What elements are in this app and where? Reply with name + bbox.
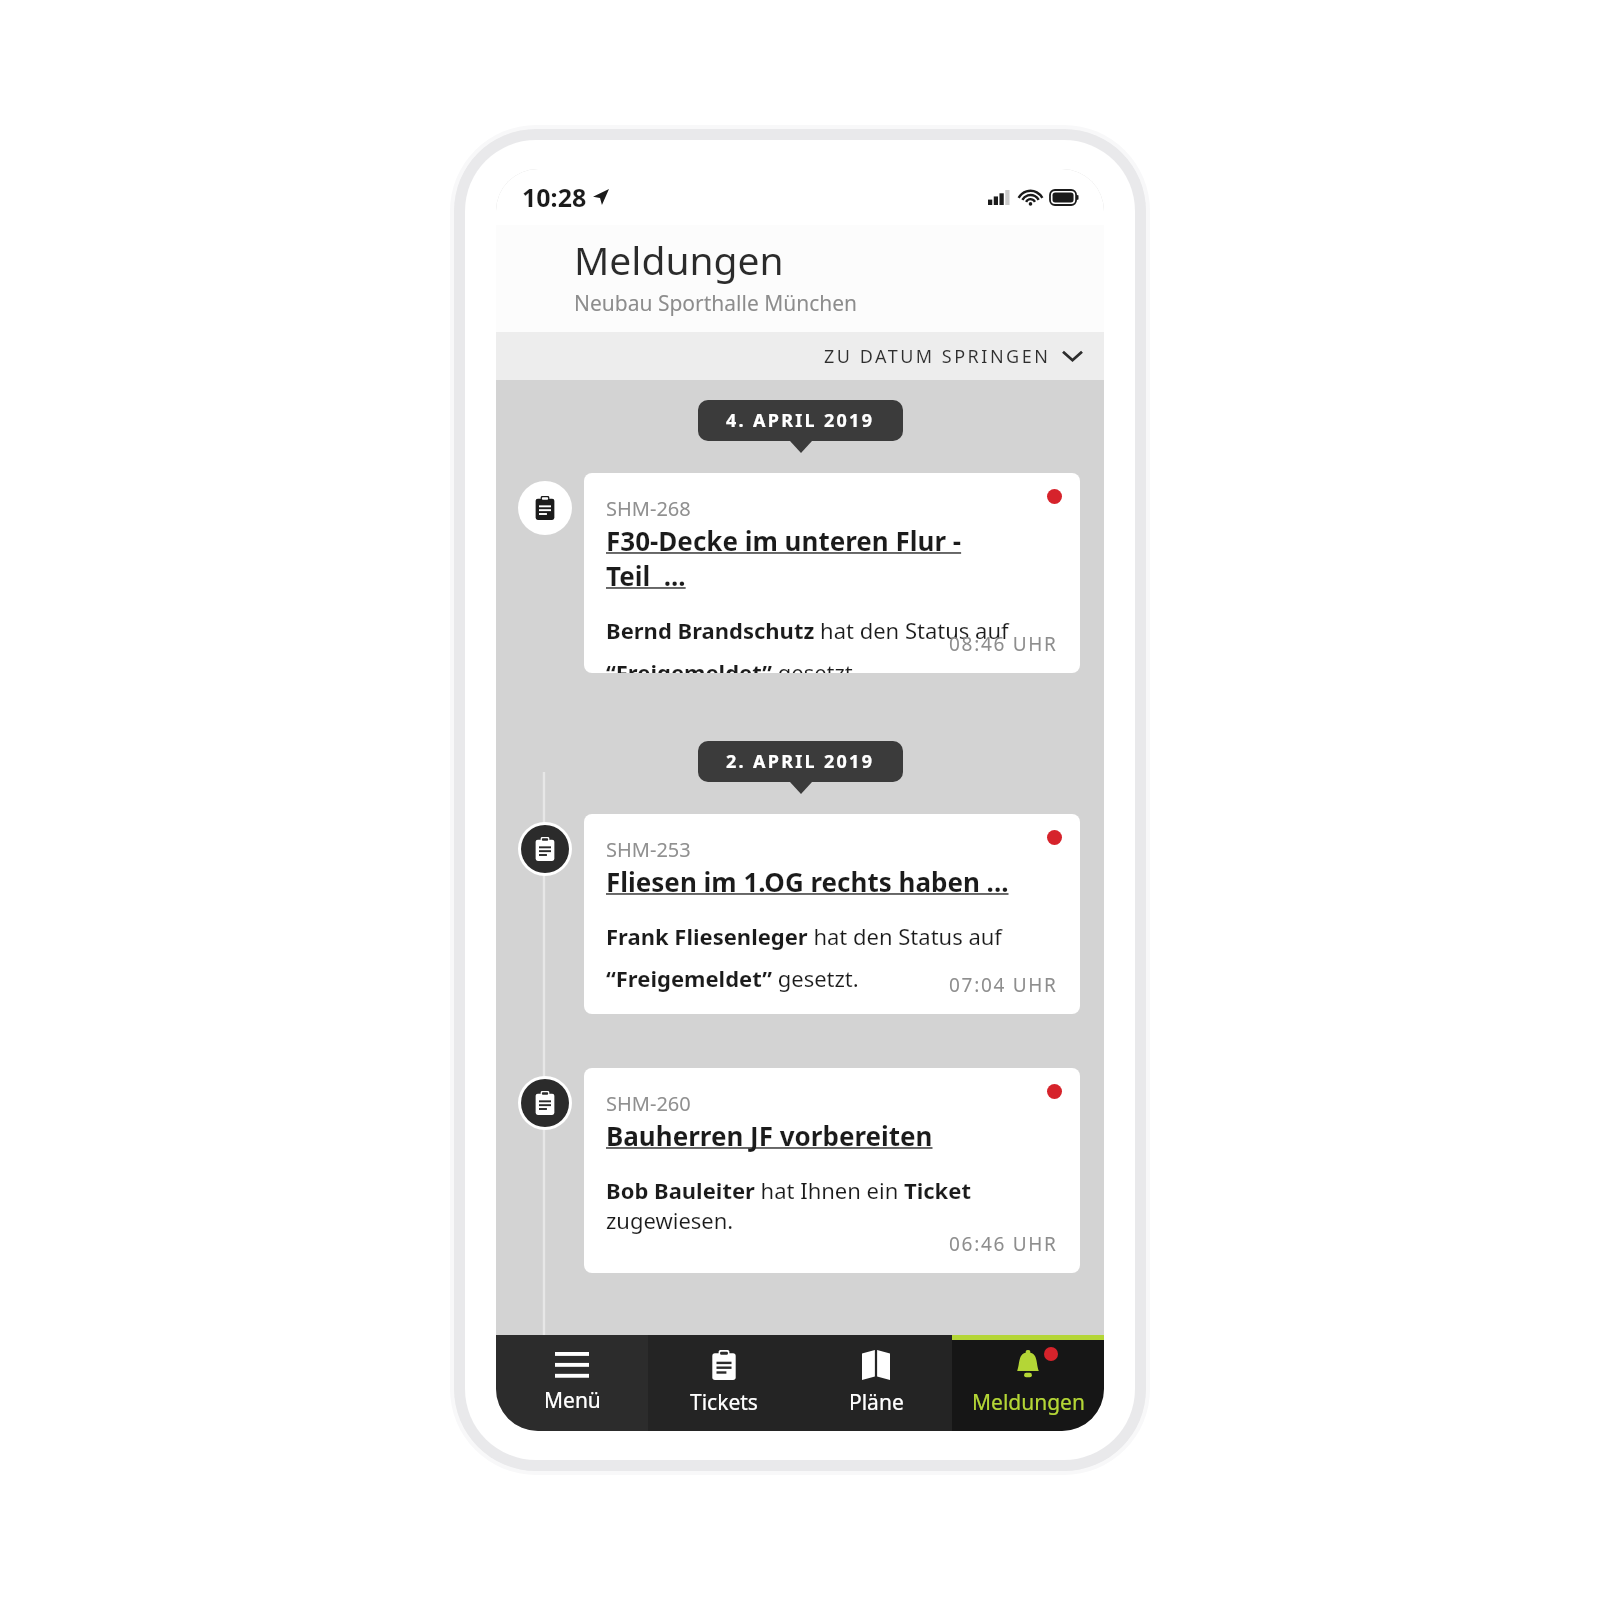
staticText: Fliesen im 1.OG rechts haben ... (606, 864, 1009, 899)
staticText: SHM-268 (606, 495, 691, 522)
other: Ticket (521, 484, 569, 532)
staticText: 07:04 UHR (949, 972, 1058, 998)
staticText: 08:46 UHR (949, 631, 1058, 657)
button[interactable]: SHM-268 (584, 473, 1080, 673)
staticText: Frank Fliesenleger hat den Status auf (606, 921, 1002, 951)
staticText: SHM-253 (606, 836, 691, 863)
staticText: “Freigemeldet” gesetzt. (606, 657, 859, 673)
other: Menü (555, 1352, 589, 1378)
staticText: Meldungen (972, 1388, 1085, 1417)
staticText: 10:28 (522, 180, 587, 214)
staticText: “Freigemeldet” gesetzt. (606, 963, 859, 993)
staticText: F30-Decke im unteren Flur - Teil ... (606, 523, 1010, 593)
button[interactable]: Meldungen (952, 1335, 1104, 1431)
button[interactable]: ZU DATUM SPRINGEN (496, 332, 1104, 380)
staticText: Meldungen (574, 233, 784, 286)
other: Ticket (521, 825, 569, 873)
staticText: Menü (544, 1386, 601, 1415)
staticText: ZU DATUM SPRINGEN (824, 344, 1051, 369)
staticText: Tickets (690, 1388, 758, 1417)
button[interactable]: Tickets (648, 1335, 800, 1431)
button[interactable]: Menü (496, 1335, 648, 1431)
staticText: Bernd Brandschutz hat den Status auf (606, 615, 1009, 645)
staticText: 4. APRIL 2019 (726, 408, 875, 433)
other: Ticket (521, 1079, 569, 1127)
staticText: SHM-260 (606, 1090, 691, 1117)
staticText: 2. APRIL 2019 (726, 749, 875, 774)
staticText: Bauherren JF vorbereiten (606, 1118, 933, 1153)
button[interactable]: Pläne (800, 1335, 952, 1431)
staticText: Bob Bauleiter hat Ihnen ein Ticket zugew… (606, 1175, 1010, 1235)
other: Meldungen (1013, 1350, 1043, 1380)
staticText: Neubau Sporthalle München (574, 289, 858, 318)
staticText: Pläne (849, 1388, 904, 1417)
button[interactable]: SHM-253 (584, 814, 1080, 1014)
staticText: 06:46 UHR (949, 1231, 1058, 1257)
button[interactable]: SHM-260 (584, 1068, 1080, 1273)
other: Pläne (862, 1350, 890, 1380)
